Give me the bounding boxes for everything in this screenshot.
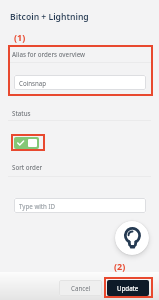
staticText: (1): [14, 31, 26, 43]
staticText: Sort order: [12, 163, 43, 171]
button[interactable]: Coinsnap: [14, 75, 146, 90]
staticText: Type with ID: [19, 202, 56, 210]
staticText: Cancel: [71, 284, 91, 292]
staticText: Bitcoin + Lightning: [10, 11, 89, 23]
staticText: Update: [117, 284, 139, 292]
staticText: Status: [12, 109, 31, 117]
staticText: Coinsnap: [19, 79, 47, 87]
staticText: Alias for orders overview: [12, 50, 86, 58]
button[interactable]: Type with ID: [14, 198, 146, 213]
button[interactable]: Help: [115, 221, 149, 255]
button[interactable]: Status toggle: [14, 137, 39, 149]
button[interactable]: Cancel: [59, 280, 102, 296]
button[interactable]: Update: [107, 280, 149, 296]
staticText: (2): [114, 260, 126, 272]
